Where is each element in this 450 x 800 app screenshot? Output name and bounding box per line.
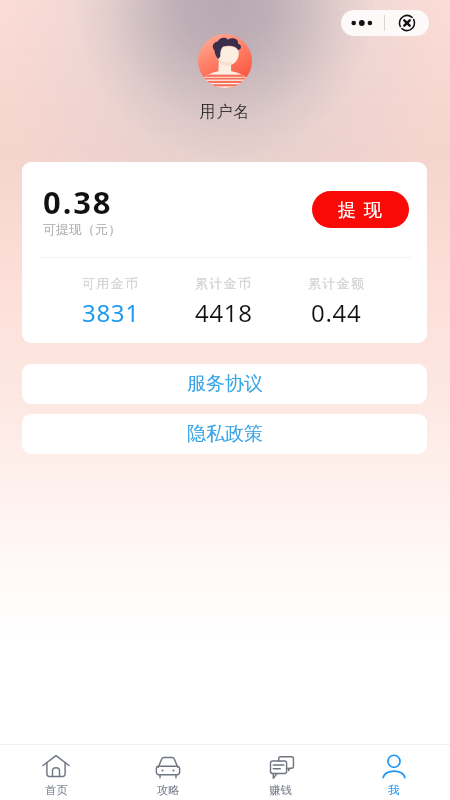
button[interactable]: 我 xyxy=(337,745,450,800)
staticText: 服务协议 xyxy=(187,372,263,396)
button[interactable]: More options xyxy=(341,10,384,36)
staticText: 可用金币 xyxy=(82,275,140,291)
staticText: 攻略 xyxy=(157,783,180,797)
button[interactable]: 隐私政策 xyxy=(22,414,427,454)
staticText: 提 现 xyxy=(338,197,384,222)
button[interactable]: 赚钱 xyxy=(224,745,337,800)
staticText: 累计金币 xyxy=(195,275,253,291)
button[interactable]: 服务协议 xyxy=(22,364,427,404)
button[interactable]: 首页 xyxy=(0,745,112,800)
staticText: 我 xyxy=(388,783,400,797)
staticText: 赚钱 xyxy=(269,783,292,797)
button[interactable]: 提 现 xyxy=(312,191,409,228)
staticText: 首页 xyxy=(45,783,68,797)
staticText: 隐私政策 xyxy=(187,422,263,446)
staticText: 4418 xyxy=(195,296,253,329)
staticText: 3831 xyxy=(82,296,140,329)
staticText: 用户名 xyxy=(0,102,450,122)
button[interactable]: Close xyxy=(385,10,429,36)
staticText: 0.38 xyxy=(43,181,113,223)
staticText: 可提现（元） xyxy=(43,221,121,237)
button[interactable]: 攻略 xyxy=(112,745,224,800)
staticText: 0.44 xyxy=(311,296,362,329)
staticText: 累计金额 xyxy=(308,275,366,291)
